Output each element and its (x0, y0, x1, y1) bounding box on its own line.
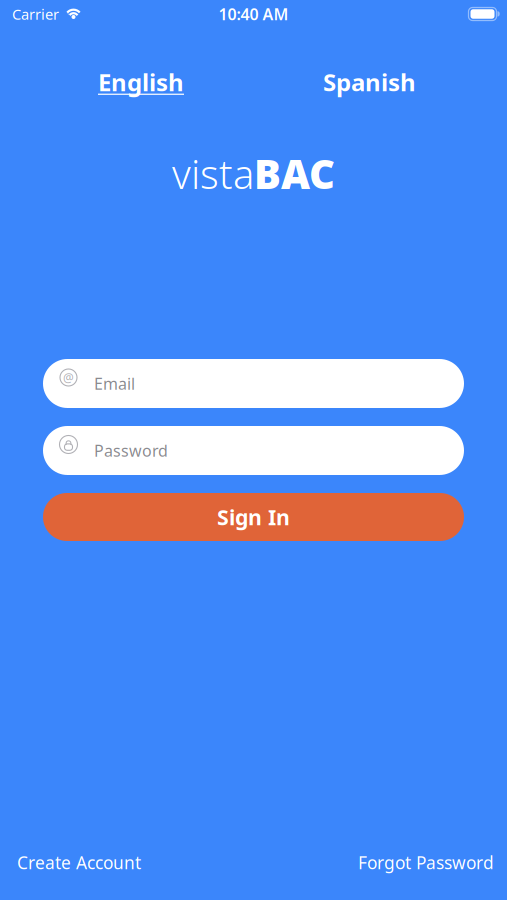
staticText: Carrier (12, 4, 59, 24)
button[interactable]: Create Account (17, 851, 141, 874)
staticText: @ (63, 369, 74, 385)
staticText: Spanish (323, 66, 416, 98)
button[interactable]: Password (43, 426, 464, 475)
button[interactable]: Sign In (43, 493, 464, 541)
staticText: 10:40 AM (218, 3, 288, 25)
staticText: Forgot Password (358, 851, 494, 874)
button[interactable]: Spanish (323, 66, 416, 98)
staticText: vista (172, 147, 254, 200)
staticText: English (98, 66, 184, 98)
staticText: BAC (254, 147, 335, 200)
button[interactable]: English (98, 66, 184, 98)
staticText: Sign In (217, 503, 290, 531)
staticText: Password (94, 440, 168, 461)
staticText: Email (94, 373, 135, 394)
staticText: Create Account (17, 851, 141, 874)
button[interactable]: Forgot Password (358, 851, 494, 874)
button[interactable]: @ (43, 359, 464, 408)
